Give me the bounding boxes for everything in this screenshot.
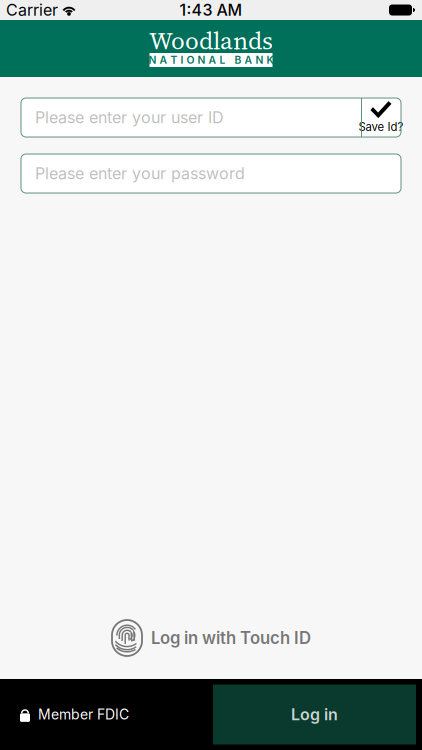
staticText: Woodlands xyxy=(149,24,273,57)
button[interactable]: Log in with Touch ID xyxy=(105,615,317,661)
staticText: Carrier xyxy=(6,0,58,20)
staticText: 1:43 AM xyxy=(179,0,242,20)
staticText: Please enter your user ID xyxy=(35,108,224,127)
staticText: Save Id? xyxy=(358,120,403,134)
staticText: Member FDIC xyxy=(38,706,129,723)
staticText: Log in with Touch ID xyxy=(151,628,311,648)
button[interactable]: Save Id xyxy=(361,98,401,137)
button[interactable]: Log in xyxy=(213,684,416,744)
staticText: Log in xyxy=(291,705,338,724)
staticText: Please enter your password xyxy=(35,164,245,183)
staticText: N A T I O N A L B A N K xyxy=(148,54,273,66)
